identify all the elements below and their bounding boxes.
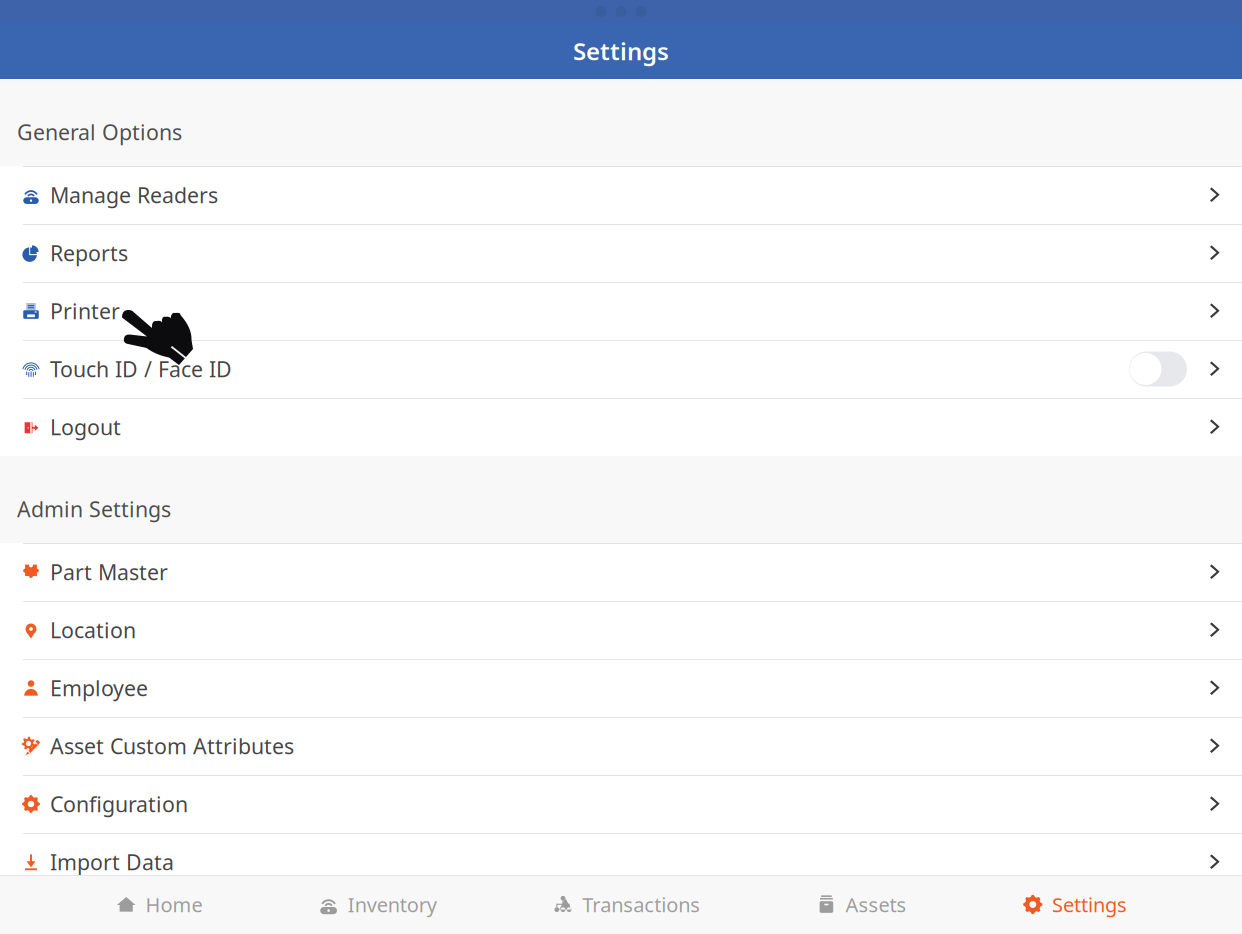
button[interactable]: Settings (1022, 875, 1127, 934)
staticText: Location (50, 616, 136, 644)
staticText: Inventory (348, 891, 437, 918)
staticText: Home (145, 891, 202, 918)
staticText: Assets (846, 891, 907, 918)
staticText: Reports (50, 239, 128, 267)
button[interactable]: Transactions (552, 875, 700, 934)
staticText: Employee (50, 674, 148, 702)
button[interactable]: Employee (0, 659, 1242, 717)
staticText: Asset Custom Attributes (50, 732, 294, 760)
staticText: Part Master (50, 558, 168, 586)
button[interactable]: Part Master (0, 543, 1242, 601)
staticText: Touch ID / Face ID (50, 355, 232, 383)
button[interactable]: Printer (0, 282, 1242, 340)
staticText: Import Data (50, 848, 174, 876)
staticText: Printer (50, 297, 120, 325)
staticText: Logout (50, 413, 121, 441)
button[interactable]: Home (115, 875, 202, 934)
staticText: Configuration (50, 790, 188, 818)
staticText: Transactions (582, 891, 700, 918)
button[interactable]: Asset Custom Attributes (0, 717, 1242, 775)
staticText: General Options (17, 118, 182, 146)
staticText: Settings (1052, 891, 1127, 918)
staticText: Settings (573, 35, 669, 67)
staticText: Manage Readers (50, 181, 218, 209)
button[interactable]: Touch ID / Face ID (0, 340, 1242, 398)
button[interactable]: Import Data (0, 833, 1242, 891)
button[interactable]: Reports (0, 224, 1242, 282)
button[interactable]: Logout (0, 398, 1242, 456)
button[interactable]: Inventory (317, 875, 437, 934)
button[interactable]: Assets (815, 875, 907, 934)
button[interactable]: Configuration (0, 775, 1242, 833)
staticText: Admin Settings (17, 495, 171, 523)
button[interactable]: Manage Readers (0, 166, 1242, 224)
button[interactable]: Location (0, 601, 1242, 659)
